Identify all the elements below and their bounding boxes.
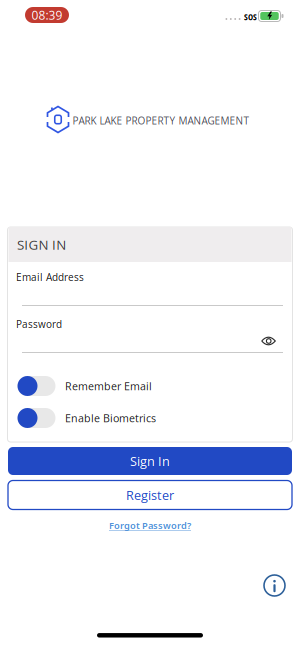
staticText: Sign In (130, 452, 170, 470)
button[interactable]: Forgot Password? (109, 519, 191, 532)
button[interactable]: Email Address (8, 266, 292, 310)
button[interactable]: Remember Email (8, 372, 292, 400)
staticText: Enable Biometrics (65, 411, 156, 425)
button[interactable]: Info (264, 575, 285, 596)
button[interactable]: Enable Biometrics (8, 404, 292, 432)
staticText: SIGN IN (17, 235, 66, 254)
staticText: Register (126, 486, 174, 504)
button[interactable]: Password (8, 312, 292, 356)
button[interactable]: Show Password (262, 336, 276, 346)
staticText: Email Address (16, 270, 84, 284)
staticText: Password (16, 317, 62, 331)
staticText: SOS (244, 11, 257, 23)
button[interactable]: Register (8, 480, 292, 509)
staticText: 08:39 (31, 7, 62, 23)
staticText: Remember Email (65, 379, 152, 393)
button[interactable]: Sign In (8, 447, 292, 475)
staticText: PARK LAKE PROPERTY MANAGEMENT (72, 114, 249, 127)
staticText: Forgot Password? (109, 519, 191, 532)
